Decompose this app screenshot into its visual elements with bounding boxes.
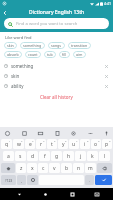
button[interactable]: Enter bbox=[95, 175, 112, 185]
button[interactable]: Remove ability bbox=[103, 83, 109, 89]
button[interactable]: skin bbox=[4, 42, 17, 49]
button[interactable]: songs bbox=[48, 42, 65, 49]
button[interactable]: v bbox=[49, 163, 60, 173]
staticText: v bbox=[53, 165, 56, 172]
button[interactable]: d bbox=[27, 151, 38, 161]
staticText: Dictionary English 13th bbox=[29, 9, 85, 16]
staticText: tub bbox=[47, 52, 53, 57]
button[interactable]: absorb bbox=[4, 51, 22, 58]
button[interactable]: c bbox=[38, 163, 48, 173]
button[interactable]: Find a word you want to search bbox=[4, 18, 109, 29]
button[interactable]: g bbox=[51, 151, 62, 161]
staticText: j bbox=[80, 153, 82, 160]
button[interactable]: Home bbox=[32, 188, 59, 200]
button[interactable]: Remove something bbox=[103, 63, 109, 69]
staticText: i bbox=[84, 141, 86, 148]
staticText: skin bbox=[11, 73, 103, 79]
staticText: 6 bbox=[65, 139, 67, 142]
button[interactable]: ability bbox=[0, 81, 113, 91]
staticText: u bbox=[72, 141, 76, 148]
button[interactable]: r bbox=[36, 139, 46, 149]
button[interactable]: u bbox=[69, 139, 79, 149]
button[interactable]: f bbox=[39, 151, 50, 161]
staticText: Like word find bbox=[5, 35, 32, 40]
button[interactable]: o bbox=[91, 139, 101, 149]
button[interactable]: tub bbox=[44, 51, 56, 58]
button[interactable]: Recents bbox=[59, 188, 86, 200]
staticText: b bbox=[65, 165, 69, 172]
button[interactable]: Hide keyboard bbox=[86, 188, 107, 200]
button[interactable]: Period bbox=[85, 175, 94, 185]
staticText: . bbox=[89, 178, 91, 183]
button[interactable]: l bbox=[99, 151, 110, 161]
button[interactable]: Clipboard bbox=[53, 129, 61, 137]
button[interactable]: ?123 bbox=[1, 175, 16, 185]
button[interactable]: Stickers bbox=[20, 129, 28, 137]
staticText: skin bbox=[7, 43, 14, 48]
staticText: w bbox=[17, 141, 21, 148]
staticText: z bbox=[20, 165, 23, 172]
button[interactable]: Emoji bbox=[27, 175, 38, 185]
button[interactable]: t bbox=[47, 139, 57, 149]
staticText: absorb bbox=[7, 52, 19, 57]
staticText: Find a word you want to search bbox=[16, 21, 78, 27]
button[interactable]: Backspace bbox=[97, 163, 112, 173]
button[interactable]: k bbox=[87, 151, 98, 161]
button[interactable]: h bbox=[63, 151, 74, 161]
button[interactable]: i bbox=[80, 139, 90, 149]
staticText: e bbox=[29, 141, 32, 148]
button[interactable]: w bbox=[13, 139, 24, 149]
button[interactable]: q bbox=[1, 139, 12, 149]
button[interactable]: s bbox=[15, 151, 26, 161]
button[interactable]: count bbox=[25, 51, 41, 58]
button[interactable]: skin bbox=[0, 71, 113, 81]
staticText: h bbox=[67, 153, 71, 160]
button[interactable]: Back bbox=[6, 188, 32, 200]
button[interactable]: m bbox=[85, 163, 96, 173]
staticText: 9 bbox=[98, 139, 100, 142]
staticText: aim bbox=[76, 52, 83, 57]
button[interactable]: x bbox=[27, 163, 37, 173]
staticText: l bbox=[104, 153, 106, 160]
button[interactable]: j bbox=[75, 151, 86, 161]
staticText: g bbox=[55, 153, 59, 160]
staticText: s bbox=[19, 153, 22, 160]
button[interactable]: p bbox=[102, 139, 112, 149]
button[interactable]: Settings bbox=[69, 129, 77, 137]
staticText: 8 bbox=[87, 139, 89, 142]
staticText: t bbox=[51, 141, 53, 148]
button[interactable]: b bbox=[61, 163, 72, 173]
staticText: d bbox=[31, 153, 35, 160]
staticText: 7 bbox=[76, 139, 78, 142]
button[interactable]: Back bbox=[0, 8, 10, 18]
button[interactable]: transition bbox=[68, 42, 91, 49]
button[interactable]: y bbox=[58, 139, 68, 149]
button[interactable]: Translate bbox=[3, 129, 11, 137]
button[interactable]: Voice input bbox=[102, 129, 110, 137]
button[interactable]: Remove skin bbox=[103, 73, 109, 79]
button[interactable]: aim bbox=[73, 51, 86, 58]
button[interactable]: GIF bbox=[36, 129, 44, 137]
staticText: transition bbox=[71, 43, 88, 48]
button[interactable]: z bbox=[16, 163, 26, 173]
staticText: 3 bbox=[32, 139, 34, 142]
button[interactable]: a bbox=[3, 151, 14, 161]
button[interactable]: n bbox=[73, 163, 84, 173]
staticText: songs bbox=[51, 43, 62, 48]
staticText: a bbox=[7, 153, 10, 160]
button[interactable]: fill bbox=[59, 51, 70, 58]
staticText: 5 bbox=[54, 139, 56, 142]
button[interactable]: More bbox=[86, 129, 94, 137]
staticText: p bbox=[105, 141, 109, 148]
staticText: something bbox=[23, 43, 42, 48]
button[interactable]: something bbox=[20, 42, 45, 49]
staticText: y bbox=[62, 141, 65, 148]
staticText: fill bbox=[62, 52, 67, 57]
button[interactable]: something bbox=[0, 61, 113, 71]
button[interactable]: Clear all history bbox=[0, 93, 113, 101]
button[interactable]: Comma bbox=[17, 175, 26, 185]
button[interactable]: Shift bbox=[1, 163, 15, 173]
button[interactable]: e bbox=[25, 139, 35, 149]
staticText: , bbox=[21, 178, 23, 183]
